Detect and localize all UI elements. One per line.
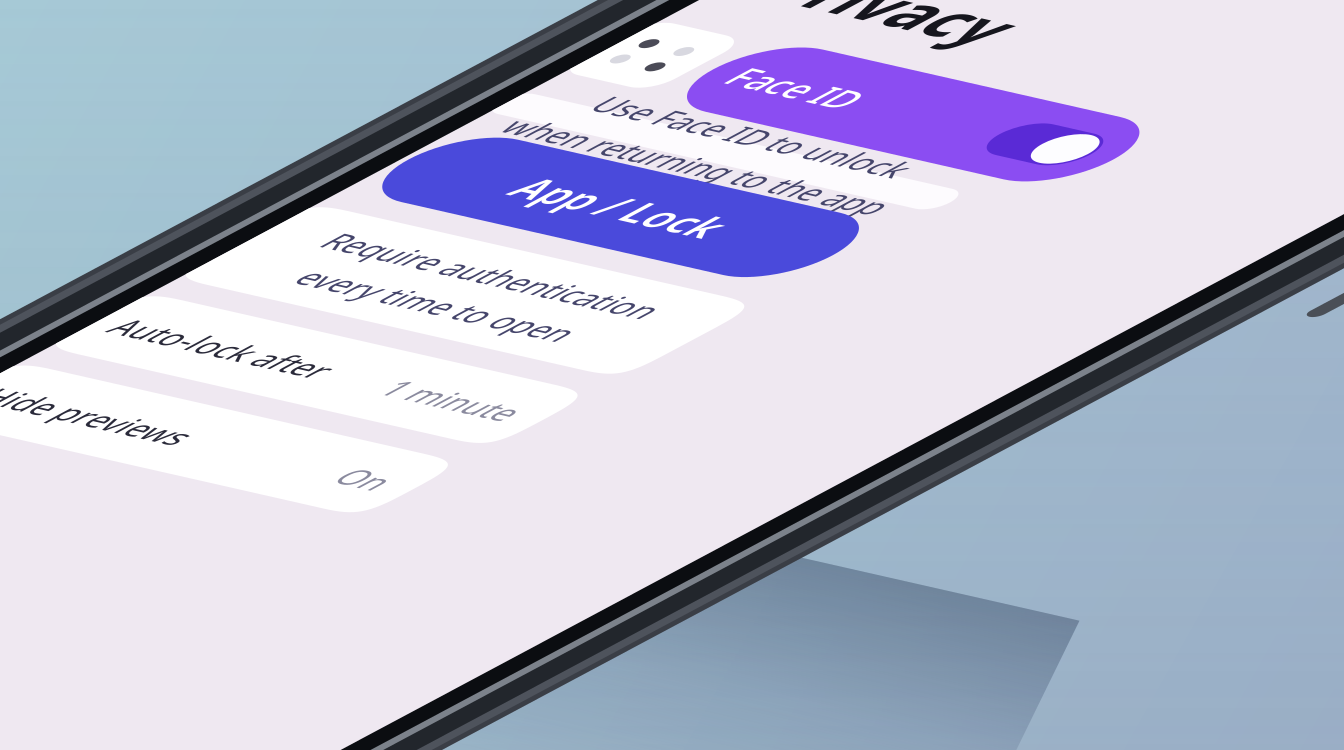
staticText: Require authentication [1044,577,1344,626]
button[interactable]: Face ID [1101,174,1344,300]
staticText: Use Face ID to unlock [1056,296,1344,345]
staticText: Face ID [1129,209,1278,265]
button[interactable]: App / Lock [983,400,1344,526]
button[interactable]: Auto-lock after [967,736,1344,750]
staticText: Privacy [1023,41,1294,140]
staticText: when returning to the app [1014,355,1344,405]
